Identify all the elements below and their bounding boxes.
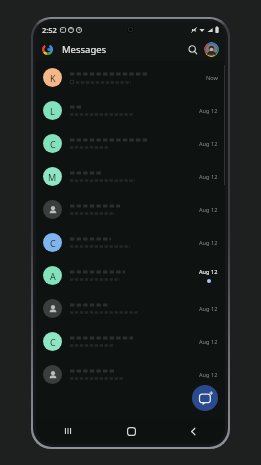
- button[interactable]: C: [36, 127, 225, 160]
- staticText: Aug 12: [199, 206, 218, 214]
- staticText: C: [50, 336, 56, 348]
- staticText: L: [50, 105, 55, 117]
- staticText: Now: [206, 74, 218, 82]
- staticText: Aug 12: [199, 140, 218, 148]
- button[interactable]: C: [36, 325, 225, 358]
- button[interactable]: Account: [204, 42, 219, 57]
- staticText: Aug 12: [199, 268, 218, 276]
- staticText: Aug 12: [199, 107, 218, 115]
- button[interactable]: Start chat: [192, 385, 218, 411]
- staticText: C: [50, 138, 56, 150]
- button[interactable]: Aug 12: [36, 292, 225, 325]
- staticText: Aug 12: [199, 371, 218, 379]
- button[interactable]: Back: [183, 421, 203, 441]
- staticText: A: [50, 270, 56, 282]
- staticText: 2:52: [42, 25, 57, 35]
- button[interactable]: Aug 12: [36, 358, 225, 391]
- button[interactable]: A: [36, 259, 225, 292]
- staticText: Aug 12: [199, 305, 218, 313]
- button[interactable]: Home: [121, 421, 141, 441]
- staticText: M: [48, 171, 57, 183]
- button[interactable]: L: [36, 94, 225, 127]
- staticText: K: [50, 72, 56, 84]
- button[interactable]: M: [36, 160, 225, 193]
- staticText: Messages: [62, 43, 107, 56]
- staticText: Aug 12: [199, 173, 218, 181]
- button[interactable]: Search: [184, 41, 201, 58]
- button[interactable]: Recents: [58, 421, 78, 441]
- staticText: Aug 12: [199, 338, 218, 346]
- staticText: C: [50, 237, 56, 249]
- button[interactable]: K: [36, 61, 225, 94]
- button[interactable]: C: [36, 226, 225, 259]
- button[interactable]: Aug 12: [36, 193, 225, 226]
- staticText: Aug 12: [199, 239, 218, 247]
